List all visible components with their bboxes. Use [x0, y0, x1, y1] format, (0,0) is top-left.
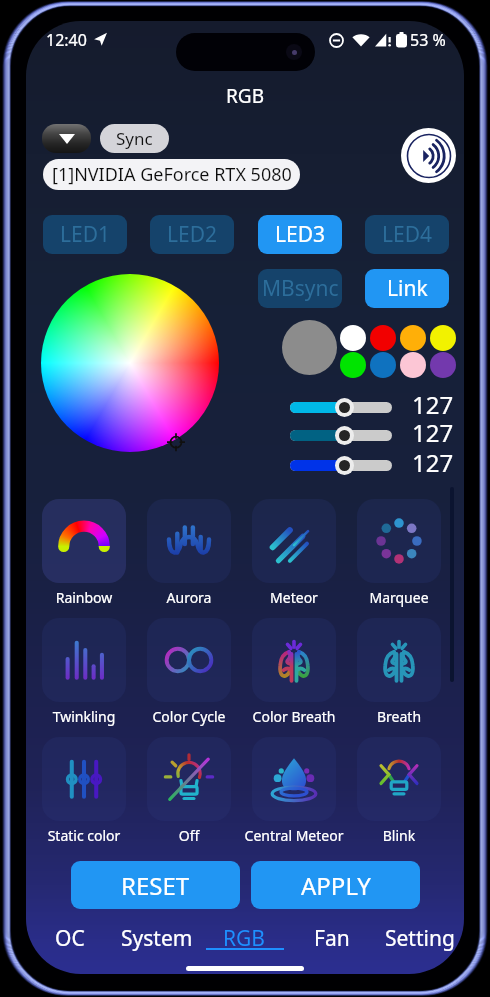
staticText: LED4 [382, 220, 433, 249]
button[interactable]: Broadcast [401, 128, 456, 183]
button[interactable] [147, 618, 231, 702]
staticText: Color Breath [234, 707, 354, 726]
button[interactable]: Sync [100, 124, 169, 153]
button[interactable] [290, 397, 392, 417]
staticText: RESET [121, 869, 190, 902]
button[interactable]: Colour swatch [430, 352, 456, 378]
staticText: 127 [412, 416, 454, 449]
staticText: [1]NVIDIA GeForce RTX 5080 [52, 162, 292, 187]
button[interactable]: RESET [71, 861, 240, 909]
staticText: Blink [339, 826, 459, 845]
staticText: LED3 [275, 220, 326, 249]
staticText: System [121, 924, 193, 953]
button[interactable]: Colour swatch [340, 352, 366, 378]
staticText: Link [387, 274, 428, 303]
staticText: 53 % [410, 29, 446, 51]
staticText: MBsync [262, 274, 339, 303]
button[interactable] [290, 425, 392, 445]
staticText: Central Meteor [234, 826, 354, 845]
button[interactable]: Setting [376, 917, 464, 959]
staticText: Aurora [129, 588, 249, 607]
button[interactable] [42, 618, 126, 702]
staticText: Off [129, 826, 249, 845]
staticText: Twinkling [26, 707, 144, 726]
button[interactable]: LED2 [150, 215, 234, 254]
staticText: LED2 [167, 220, 218, 249]
button[interactable]: Colour swatch [400, 352, 426, 378]
staticText: RGB [26, 83, 464, 109]
button[interactable]: Expand device list [42, 124, 91, 153]
staticText: Color Cycle [129, 707, 249, 726]
button[interactable]: LED1 [43, 215, 127, 254]
button[interactable]: APPLY [251, 861, 420, 909]
staticText: Fan [314, 924, 350, 953]
staticText: Rainbow [26, 588, 144, 607]
button[interactable]: Colour swatch [370, 325, 396, 351]
button[interactable] [42, 737, 126, 821]
button[interactable]: Colour swatch [430, 325, 456, 351]
staticText: Breath [339, 707, 459, 726]
button[interactable]: Colour swatch [370, 352, 396, 378]
staticText: LED1 [60, 220, 111, 249]
staticText: Marquee [339, 588, 459, 607]
button[interactable]: Current colour [282, 320, 337, 375]
button[interactable] [252, 618, 336, 702]
button[interactable] [357, 499, 441, 583]
staticText: 127 [412, 388, 454, 421]
staticText: APPLY [301, 869, 371, 902]
button[interactable] [357, 737, 441, 821]
button[interactable] [357, 618, 441, 702]
button[interactable]: Colour swatch [340, 325, 366, 351]
button[interactable] [252, 499, 336, 583]
staticText: RGB [223, 924, 265, 953]
button[interactable]: Colour swatch [400, 325, 426, 351]
button[interactable] [290, 455, 392, 475]
button[interactable]: RGB [200, 917, 288, 959]
staticText: 12:40 [46, 29, 87, 51]
staticText: 127 [412, 446, 454, 479]
button[interactable]: OC [26, 917, 113, 959]
button[interactable]: MBsync [258, 269, 342, 308]
button[interactable]: [1]NVIDIA GeForce RTX 5080 [43, 159, 300, 190]
button[interactable]: Link [365, 269, 449, 308]
button[interactable] [42, 499, 126, 583]
button[interactable]: LED3 [258, 215, 342, 254]
staticText: Setting [385, 924, 455, 953]
button[interactable]: Colour wheel [41, 274, 219, 452]
staticText: OC [55, 924, 85, 953]
button[interactable]: Fan [288, 917, 376, 959]
button[interactable] [147, 737, 231, 821]
button[interactable]: System [113, 917, 200, 959]
button[interactable] [252, 737, 336, 821]
button[interactable]: LED4 [365, 215, 449, 254]
staticText: Static color [26, 826, 144, 845]
staticText: Sync [116, 127, 153, 150]
button[interactable] [147, 499, 231, 583]
staticText: Meteor [234, 588, 354, 607]
